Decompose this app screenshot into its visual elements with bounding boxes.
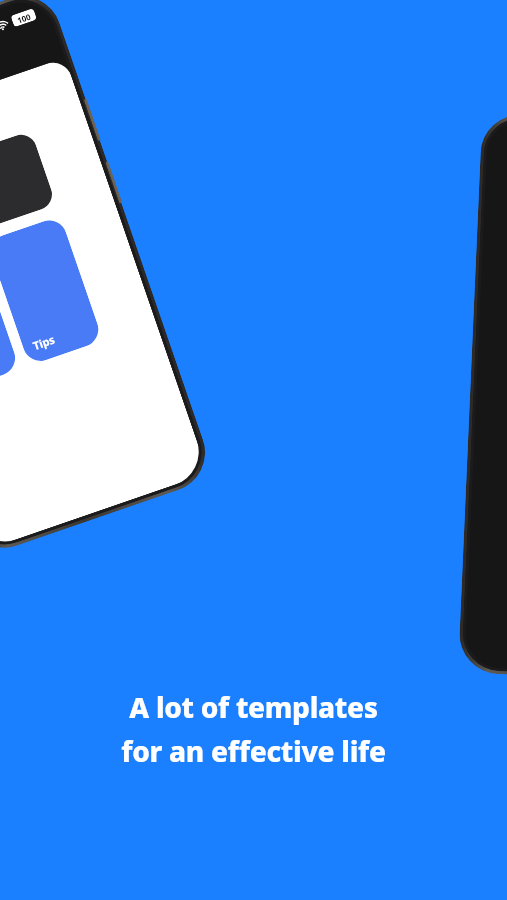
staticText: A lot of templates: [129, 688, 378, 726]
button[interactable]: Tips: [0, 216, 103, 366]
button[interactable]: App preview phone: [0, 0, 216, 559]
button[interactable]: Second app preview phone: [458, 113, 507, 683]
staticText: for an effective life: [121, 732, 386, 770]
button[interactable]: Ideas for Reels: [0, 244, 20, 394]
staticText: Tips: [31, 331, 57, 353]
staticText: 100: [15, 11, 32, 26]
button[interactable]: Instagram templates: [0, 130, 56, 230]
